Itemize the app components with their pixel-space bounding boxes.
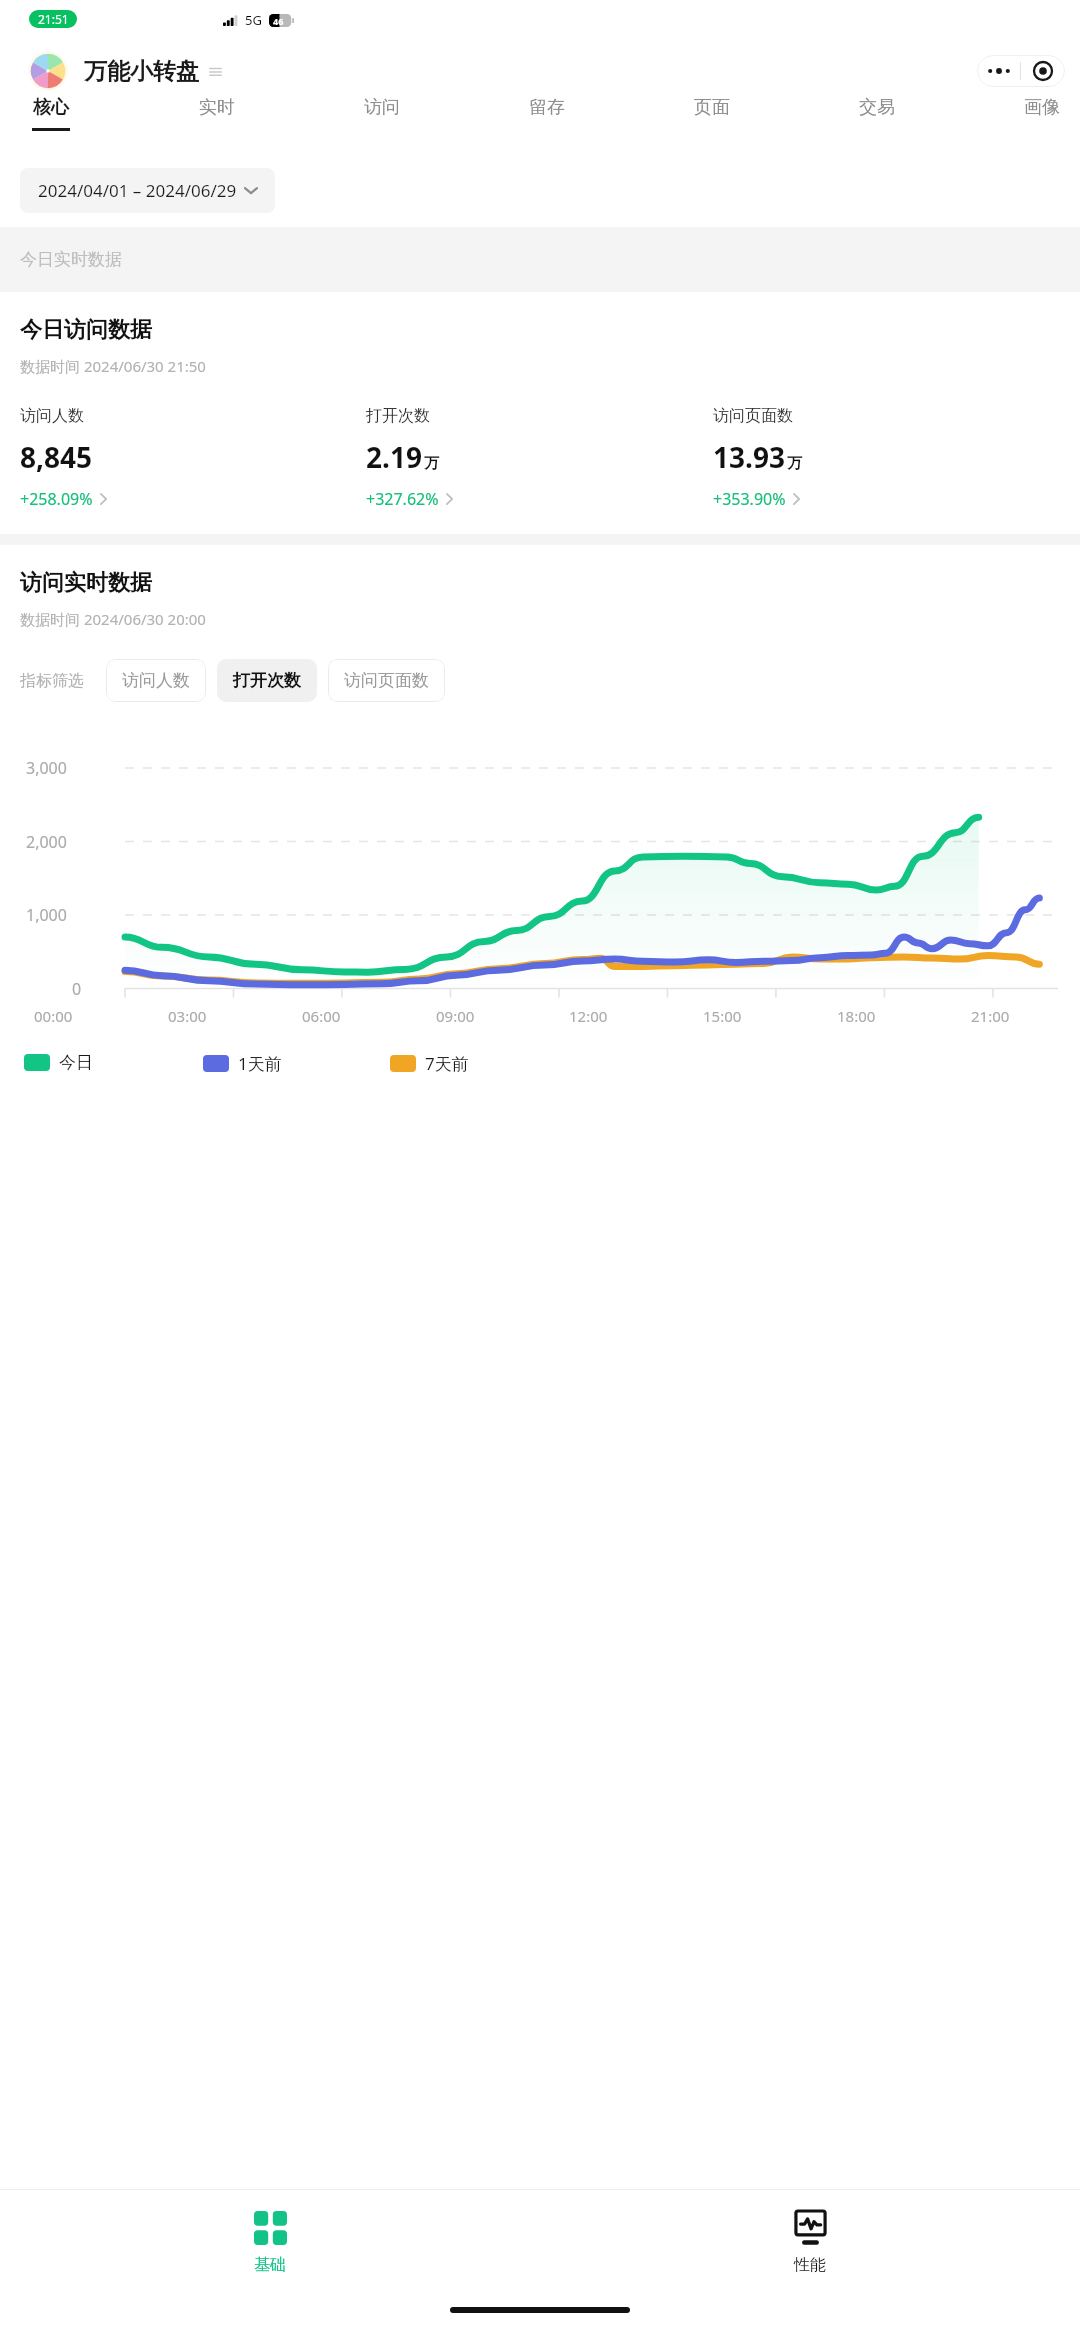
staticText: 0 [72, 978, 82, 1000]
staticText: 今日 [59, 1052, 93, 1073]
staticText: 12:00 [569, 1006, 608, 1026]
staticText: 13.93 [713, 438, 785, 476]
staticText: 访问页面数 [344, 670, 429, 691]
staticText: 46 [273, 15, 284, 27]
staticText: 2.19 [366, 438, 422, 476]
button[interactable]: 核心 [30, 96, 72, 131]
staticText: 访问人数 [122, 670, 190, 691]
staticText: 留存 [529, 96, 565, 119]
staticText: 今日访问数据 [20, 316, 152, 344]
staticText: 实时 [199, 96, 235, 119]
staticText: +353.90% [713, 488, 786, 510]
staticText: 1,000 [26, 904, 67, 926]
staticText: 性能 [794, 2255, 826, 2275]
staticText: 访问页面数 [713, 406, 793, 426]
staticText: 今日实时数据 [20, 249, 122, 270]
staticText: +327.62% [366, 488, 439, 510]
staticText: 数据时间 2024/06/30 20:00 [20, 609, 206, 629]
staticText: 数据时间 2024/06/30 21:50 [20, 356, 206, 376]
staticText: 访问 [364, 96, 400, 119]
staticText: 18:00 [837, 1006, 876, 1026]
button[interactable]: 访问 [362, 96, 402, 131]
staticText: 21:51 [38, 11, 69, 27]
button[interactable]: 性能 [540, 2190, 1080, 2295]
staticText: 万 [787, 454, 802, 473]
staticText: 页面 [694, 96, 730, 119]
staticText: 访问实时数据 [20, 569, 152, 597]
staticText: 交易 [859, 96, 895, 119]
staticText: 5G [245, 11, 262, 29]
button[interactable]: 访问人数 [106, 659, 206, 702]
staticText: 3,000 [26, 757, 67, 779]
button[interactable]: 打开次数 [366, 406, 713, 510]
staticText: 万 [424, 454, 439, 473]
button[interactable]: 留存 [527, 96, 567, 131]
button[interactable]: Close [1021, 55, 1065, 87]
staticText: 打开次数 [366, 406, 430, 426]
button[interactable]: More [977, 55, 1020, 87]
staticText: 2,000 [26, 831, 67, 853]
staticText: 00:00 [34, 1006, 73, 1026]
button[interactable]: 交易 [857, 96, 897, 131]
staticText: 打开次数 [233, 670, 301, 691]
button[interactable]: 访问页面数 [713, 406, 1060, 510]
staticText: 8,845 [20, 438, 93, 476]
button[interactable]: 基础 [0, 2190, 540, 2295]
staticText: +258.09% [20, 488, 93, 510]
button[interactable]: 画像 [1022, 96, 1062, 131]
button[interactable]: 访问页面数 [328, 659, 445, 702]
staticText: 15:00 [703, 1006, 742, 1026]
staticText: 21:00 [971, 1006, 1010, 1026]
button[interactable]: 2024/04/01 – 2024/06/29 [20, 168, 275, 213]
staticText: 06:00 [302, 1006, 341, 1026]
button[interactable]: 访问人数 [20, 406, 366, 510]
staticText: 03:00 [168, 1006, 207, 1026]
staticText: 核心 [33, 96, 69, 119]
staticText: 1天前 [238, 1052, 282, 1075]
staticText: 2024/04/01 – 2024/06/29 [38, 179, 237, 202]
staticText: 画像 [1024, 96, 1060, 119]
button[interactable]: 页面 [692, 96, 732, 131]
button[interactable]: 实时 [197, 96, 237, 131]
staticText: 09:00 [436, 1006, 475, 1026]
staticText: 指标筛选 [20, 671, 84, 691]
staticText: 基础 [254, 2255, 286, 2275]
button[interactable]: 打开次数 [217, 659, 317, 702]
staticText: 万能小转盘 [84, 57, 199, 86]
staticText: 7天前 [425, 1052, 469, 1075]
staticText: 访问人数 [20, 406, 84, 426]
